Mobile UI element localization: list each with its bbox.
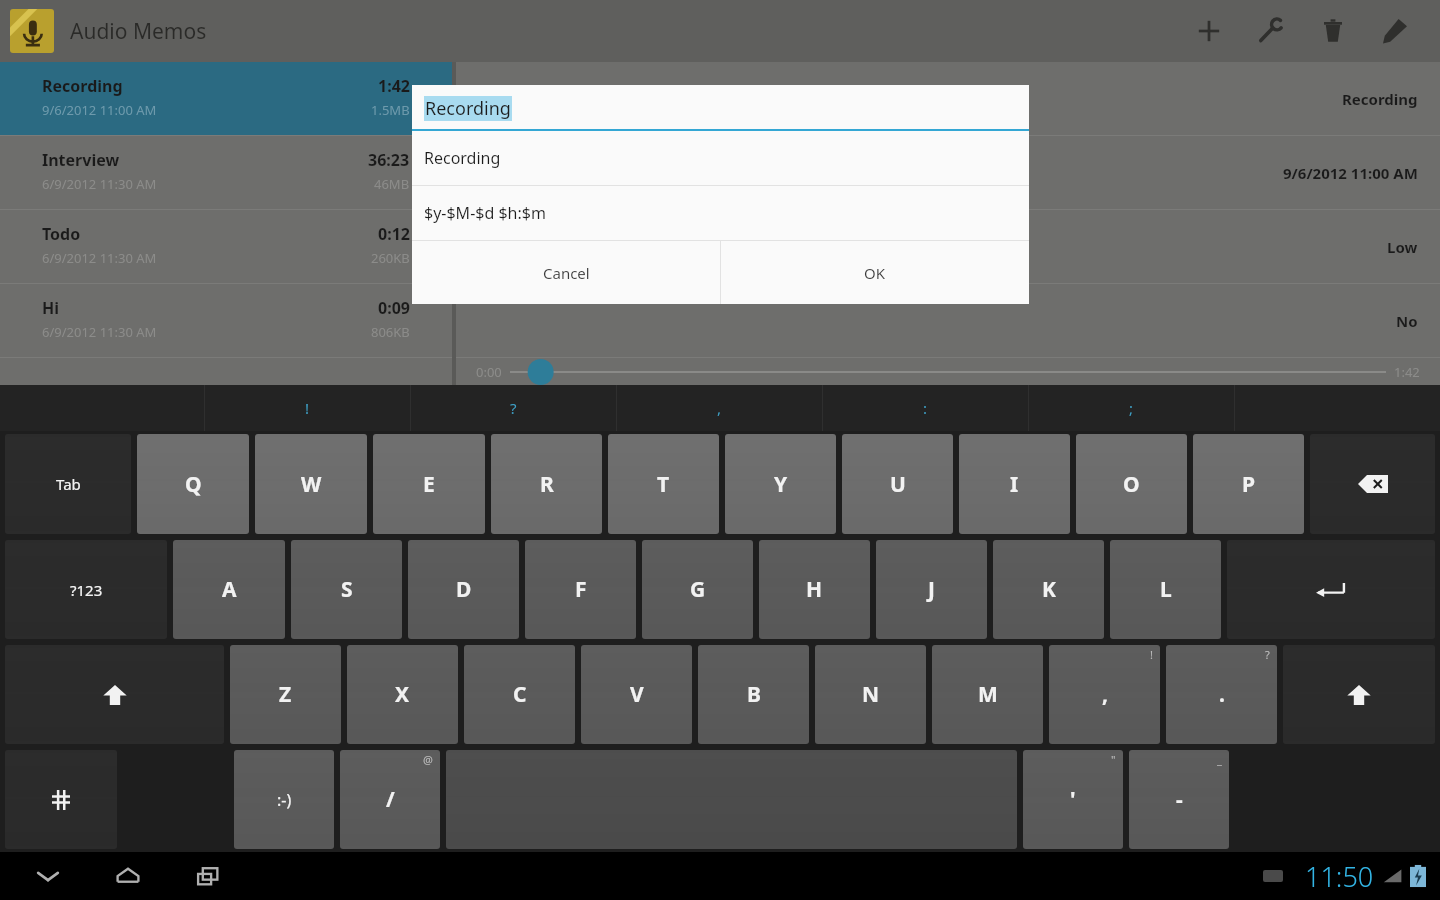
staticText: 806KB — [371, 323, 410, 341]
button[interactable]: Interview — [0, 136, 452, 209]
button[interactable]: No — [456, 284, 1440, 357]
button[interactable]: K — [993, 540, 1104, 639]
staticText: , — [717, 398, 722, 418]
staticText: No — [1396, 311, 1418, 331]
staticText: G — [690, 575, 706, 604]
staticText: B — [747, 680, 761, 709]
button[interactable]: Recording — [412, 131, 1029, 185]
button[interactable]: shift — [5, 645, 224, 744]
button[interactable]: N — [815, 645, 926, 744]
button[interactable]: backspace — [1310, 434, 1435, 534]
button[interactable]: B — [698, 645, 809, 744]
staticText: Recording — [425, 96, 511, 121]
button[interactable]: T — [608, 434, 719, 534]
button[interactable]: , — [617, 385, 822, 431]
button[interactable]: lang — [5, 750, 117, 849]
button[interactable]: Y — [725, 434, 836, 534]
button[interactable]: Q — [137, 434, 249, 534]
button[interactable]: Rename — [1364, 0, 1426, 62]
button[interactable]: Todo — [0, 210, 452, 283]
button[interactable]: F — [525, 540, 636, 639]
staticText: C — [513, 680, 527, 709]
staticText: Cancel — [543, 263, 590, 283]
button[interactable]: R — [491, 434, 602, 534]
button[interactable]: ; — [1029, 385, 1234, 431]
button[interactable]: J — [876, 540, 987, 639]
button[interactable]: : — [823, 385, 1028, 431]
button[interactable]: " — [1023, 750, 1123, 849]
staticText: F — [575, 575, 587, 604]
button[interactable]: Tab — [5, 434, 131, 534]
staticText: 36:23 — [368, 149, 410, 171]
staticText: : — [923, 398, 928, 418]
staticText: V — [630, 680, 644, 709]
staticText: - — [1176, 785, 1183, 814]
staticText: 0:09 — [378, 297, 410, 319]
button[interactable]: W — [255, 434, 367, 534]
button[interactable]: $y-$M-$d $h:$m — [412, 186, 1029, 240]
staticText: 1.5MB — [371, 101, 410, 119]
button[interactable]: ? — [1166, 645, 1277, 744]
staticText: Q — [185, 470, 202, 499]
button[interactable]: V — [581, 645, 692, 744]
button[interactable]: Hi — [0, 284, 452, 357]
button[interactable]: Delete — [1302, 0, 1364, 62]
button[interactable]: Home — [104, 852, 152, 900]
button[interactable]: Recent apps — [184, 852, 232, 900]
staticText: 1:42 — [378, 75, 410, 97]
button[interactable]: X — [347, 645, 458, 744]
button[interactable]: Recording — [0, 62, 452, 135]
staticText: O — [1123, 470, 1140, 499]
button[interactable]: O — [1076, 434, 1187, 534]
staticText: , — [1102, 680, 1108, 709]
staticText: :-) — [277, 789, 292, 811]
button[interactable]: S — [291, 540, 402, 639]
button[interactable]: ! — [1049, 645, 1160, 744]
button[interactable]: P — [1193, 434, 1304, 534]
button[interactable]: D — [408, 540, 519, 639]
button[interactable]: Add memo — [1178, 0, 1240, 62]
staticText: ' — [1070, 785, 1076, 814]
staticText: Interview — [42, 149, 120, 171]
button[interactable]: OK — [721, 241, 1029, 304]
button[interactable]: Recording — [456, 62, 1440, 135]
staticText: ; — [1129, 398, 1134, 418]
button[interactable]: Low — [456, 210, 1440, 283]
button[interactable]: A — [173, 540, 285, 639]
staticText: U — [890, 470, 906, 499]
staticText: A — [222, 575, 237, 604]
staticText: X — [395, 680, 410, 709]
button[interactable]: M — [932, 645, 1043, 744]
button[interactable]: enter — [1227, 540, 1435, 639]
button[interactable]: ! — [205, 385, 410, 431]
button[interactable]: :-) — [234, 750, 334, 849]
button[interactable]: L — [1110, 540, 1221, 639]
button[interactable]: Settings — [1240, 0, 1302, 62]
button[interactable]: Cancel — [412, 241, 720, 304]
staticText: D — [456, 575, 472, 604]
button[interactable]: U — [842, 434, 953, 534]
staticText: / — [386, 785, 395, 814]
button[interactable]: ?123 — [5, 540, 167, 639]
button[interactable]: C — [464, 645, 575, 744]
button[interactable]: shift — [1283, 645, 1435, 744]
button[interactable]: Hide keyboard — [24, 852, 72, 900]
button[interactable]: G — [642, 540, 753, 639]
staticText: Recording — [424, 147, 501, 169]
button[interactable]: @ — [340, 750, 440, 849]
staticText: 46MB — [374, 175, 410, 193]
button[interactable]: Z — [230, 645, 341, 744]
button[interactable]: Switch input method — [1253, 856, 1293, 896]
button[interactable]: I — [959, 434, 1070, 534]
button[interactable]: ? — [411, 385, 616, 431]
button[interactable] — [10, 9, 54, 53]
staticText: J — [928, 575, 935, 604]
button[interactable]: H — [759, 540, 870, 639]
staticText: 6/9/2012 11:30 AM — [42, 249, 157, 267]
button[interactable]: _ — [1129, 750, 1229, 849]
button[interactable]: 9/6/2012 11:00 AM — [456, 136, 1440, 209]
button[interactable]: E — [373, 434, 485, 534]
